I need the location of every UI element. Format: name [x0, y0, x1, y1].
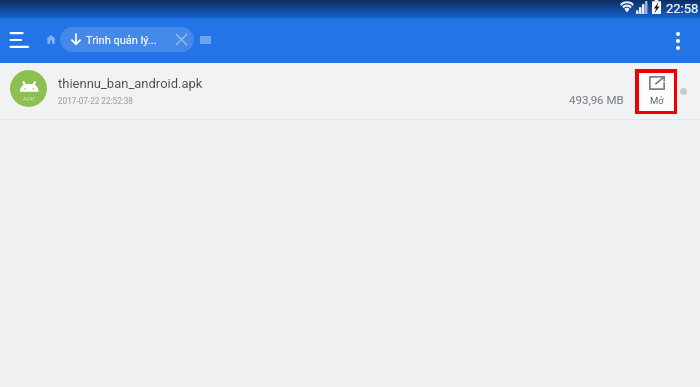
staticText: thiennu_ban_android.apk — [58, 76, 203, 91]
staticText: 2017-07-22 22:52:38 — [58, 96, 133, 106]
staticText: 22:58 — [666, 1, 699, 16]
button[interactable]: Home — [37, 25, 65, 53]
button[interactable]: APK — [0, 63, 700, 120]
button[interactable]: Menu — [2, 23, 36, 57]
button[interactable]: Tabs — [194, 29, 216, 51]
button[interactable]: Open — [635, 69, 677, 114]
staticText: 493,96 MB — [569, 93, 624, 106]
staticText: APK — [23, 95, 35, 102]
button[interactable]: More options — [661, 24, 695, 58]
button[interactable]: Trình quản lý... — [60, 27, 194, 52]
staticText: Mở — [650, 95, 664, 106]
button[interactable]: Close tab — [169, 27, 193, 52]
staticText: Trình quản lý... — [86, 34, 157, 47]
